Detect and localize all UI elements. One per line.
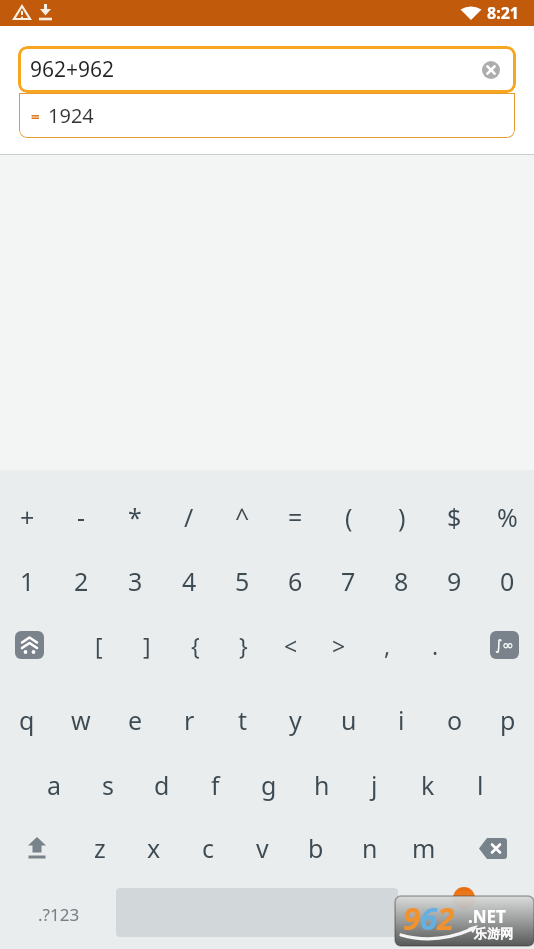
staticText: . [432,630,439,661]
staticText: 2 [74,564,89,598]
staticText: - [77,500,86,534]
button[interactable]: j [348,754,401,816]
button[interactable]: 5 [216,548,269,614]
staticText: % [497,500,518,534]
button[interactable]: g [242,754,295,816]
button[interactable]: r [162,686,216,754]
button[interactable]: a [27,754,81,816]
staticText: b [308,831,324,865]
button[interactable] [15,631,44,659]
button[interactable]: t [216,686,269,754]
button[interactable] [451,816,534,880]
button[interactable]: s [81,754,135,816]
staticText: > [332,630,346,661]
button[interactable]: l [454,754,507,816]
staticText: h [314,768,330,802]
staticText: $ [447,500,462,534]
button[interactable]: 6 [269,548,322,614]
staticText: 8 [394,564,409,598]
button[interactable]: d [135,754,189,816]
button[interactable]: ( [322,486,375,548]
button[interactable]: 4 [162,548,216,614]
button[interactable]: q [0,686,54,754]
button[interactable]: 9 [428,548,481,614]
button[interactable]: c [181,816,235,880]
staticText: .NET [468,905,506,928]
button[interactable]: h [295,754,348,816]
button[interactable]: 7 [322,548,375,614]
button[interactable] [0,816,73,880]
button[interactable]: . [411,614,459,676]
staticText: l [477,768,484,802]
staticText: 9 [447,564,462,598]
button[interactable]: u [322,686,375,754]
staticText: 4 [182,564,197,598]
button[interactable]: = [19,93,515,138]
button[interactable]: y [269,686,322,754]
staticText: 0 [500,564,515,598]
staticText: r [184,703,195,737]
staticText: q [19,703,35,737]
button[interactable]: b [289,816,343,880]
button[interactable]: ^ [216,486,269,548]
button[interactable]: n [343,816,397,880]
button[interactable]: m [397,816,451,880]
button[interactable]: / [162,486,216,548]
button[interactable]: 3 [108,548,162,614]
staticText: ^ [235,500,250,534]
button[interactable]: - [54,486,108,548]
button[interactable]: p [481,686,534,754]
button[interactable]: z [73,816,127,880]
staticText: i [398,703,405,737]
button[interactable] [116,888,398,937]
button[interactable]: f [189,754,242,816]
button[interactable]: % [481,486,534,548]
button[interactable]: x [127,816,181,880]
staticText: m [412,831,436,865]
button[interactable]: + [0,486,54,548]
staticText: < [284,630,298,661]
staticText: 8:21 [487,2,519,24]
staticText: ] [143,630,151,661]
button[interactable]: 1 [0,548,54,614]
button[interactable]: = [269,486,322,548]
button[interactable]: e [108,686,162,754]
staticText: ∫∞ [495,637,514,653]
staticText: g [261,768,277,802]
button[interactable]: > [315,614,363,676]
staticText: c [202,831,215,865]
button[interactable]: 8 [375,548,428,614]
button[interactable]: i [375,686,428,754]
button[interactable]: .?123 [38,903,80,926]
staticText: { [191,630,200,661]
staticText: k [421,768,435,802]
staticText: o [447,703,463,737]
button[interactable]: 962+962 [18,46,516,93]
button[interactable]: ] [123,614,171,676]
button[interactable]: { [171,614,219,676]
button[interactable]: 0 [481,548,534,614]
button[interactable]: k [401,754,454,816]
button[interactable]: w [54,686,108,754]
button[interactable]: ∫∞ [490,631,519,659]
staticText: 5 [235,564,250,598]
button[interactable]: , [363,614,411,676]
staticText: w [71,703,91,737]
staticText: p [500,703,516,737]
staticText: = [31,106,40,126]
staticText: 962 [403,897,455,939]
button[interactable]: v [235,816,289,880]
button[interactable]: } [219,614,267,676]
button[interactable]: ) [375,486,428,548]
button[interactable]: * [108,486,162,548]
button[interactable]: $ [428,486,481,548]
staticText: } [239,630,248,661]
staticText: d [154,768,170,802]
staticText: s [102,768,114,802]
button[interactable]: [ [75,614,123,676]
staticText: 6 [288,564,303,598]
button[interactable]: 2 [54,548,108,614]
button[interactable]: < [267,614,315,676]
button[interactable]: o [428,686,481,754]
staticText: a [47,768,62,802]
